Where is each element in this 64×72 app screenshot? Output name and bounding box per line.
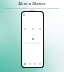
staticText: Insights and answers right when you need… xyxy=(4,6,60,12)
button[interactable]: Menu xyxy=(23,14,25,16)
button[interactable]: Menu xyxy=(22,13,43,17)
staticText: AI at a Glance xyxy=(18,1,46,6)
